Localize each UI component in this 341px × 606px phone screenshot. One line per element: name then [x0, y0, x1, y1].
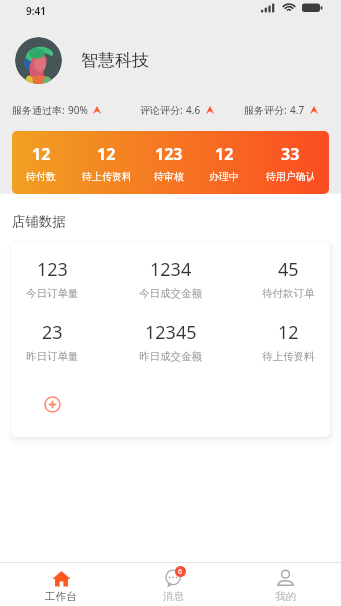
staticText: 我的 — [275, 590, 296, 603]
button[interactable]: 12345 — [139, 320, 202, 363]
staticText: 45 — [278, 257, 299, 282]
staticText: 12 — [278, 320, 299, 345]
staticText: 12 — [97, 143, 116, 165]
button[interactable]: 6 — [117, 563, 229, 606]
button[interactable]: 123 — [26, 257, 79, 300]
staticText: 待上传资料 — [82, 170, 130, 183]
button[interactable]: 23 — [26, 320, 79, 363]
button[interactable]: 12 — [262, 320, 315, 363]
staticText: 1234 — [150, 257, 192, 282]
staticText: 23 — [42, 320, 63, 345]
staticText: 今日订单量 — [26, 287, 79, 300]
staticText: 123 — [155, 143, 183, 165]
staticText: 工作台 — [45, 590, 77, 603]
staticText: 消息 — [163, 590, 184, 603]
button[interactable]: 添加 — [44, 396, 61, 413]
button[interactable]: 12 — [200, 131, 248, 194]
button[interactable]: 123 — [145, 131, 193, 194]
staticText: 店铺数据 — [12, 213, 66, 230]
staticText: 33 — [281, 143, 300, 165]
button[interactable]: 45 — [262, 257, 315, 300]
staticText: 服务通过率: — [12, 103, 65, 117]
staticText: 待付数 — [26, 170, 56, 183]
staticText: 12 — [32, 143, 51, 165]
button[interactable]: 工作台 — [5, 563, 117, 606]
staticText: 12 — [215, 143, 234, 165]
staticText: 4.6 — [186, 103, 201, 117]
staticText: 昨日成交金额 — [139, 350, 202, 363]
staticText: 90% — [68, 103, 88, 117]
staticText: 昨日订单量 — [26, 350, 79, 363]
staticText: 今日成交金额 — [139, 287, 202, 300]
staticText: 待用户确认 — [266, 170, 314, 183]
staticText: 服务评分: — [244, 103, 287, 117]
staticText: 6 — [178, 567, 183, 577]
staticText: 办理中 — [209, 170, 239, 183]
staticText: 评论评分: — [140, 103, 183, 117]
staticText: 123 — [37, 257, 68, 282]
button[interactable]: 12 — [17, 131, 65, 194]
staticText: 待上传资料 — [262, 350, 315, 363]
button[interactable]: 12 — [82, 131, 130, 194]
staticText: 4.7 — [290, 103, 305, 117]
staticText: 12345 — [145, 320, 197, 345]
staticText: 待付款订单 — [262, 287, 315, 300]
button[interactable]: 33 — [266, 131, 314, 194]
button[interactable]: 1234 — [139, 257, 202, 300]
button[interactable]: 我的 — [229, 563, 341, 606]
staticText: 待审核 — [154, 170, 184, 183]
staticText: 智慧科技 — [81, 50, 149, 71]
staticText: 9:41 — [26, 4, 46, 18]
